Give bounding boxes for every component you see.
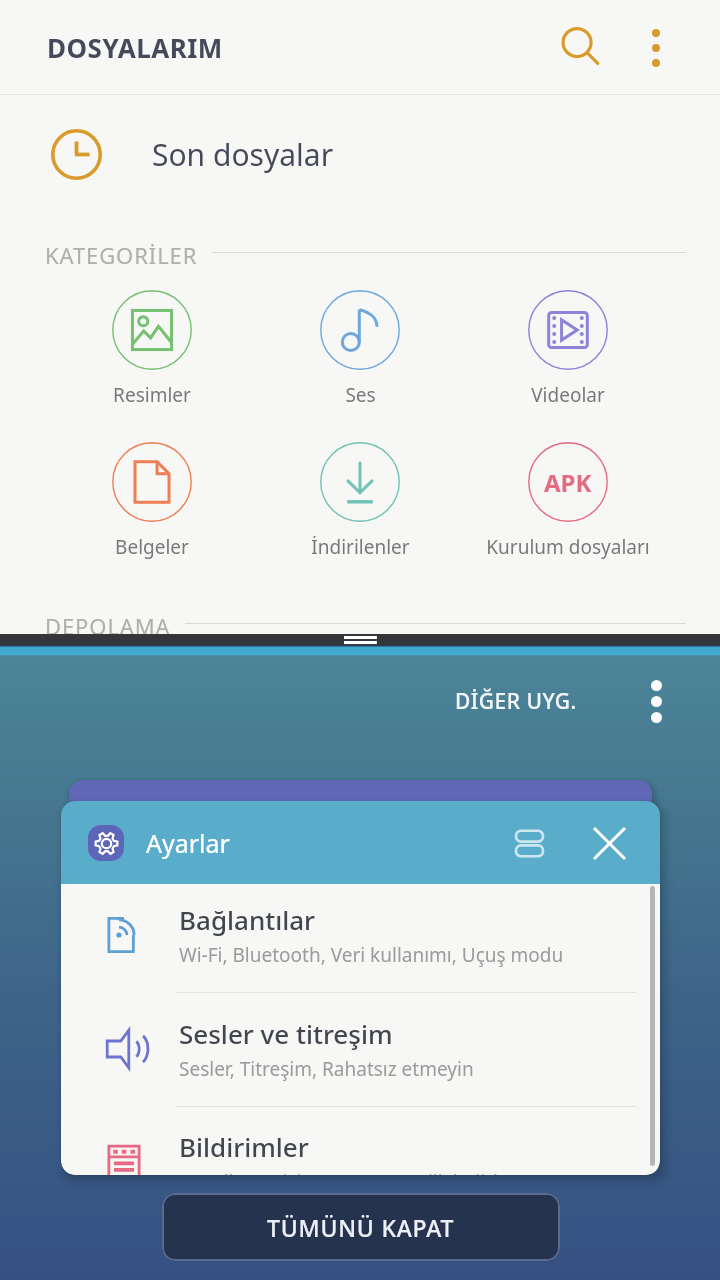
button[interactable]: Belgeler <box>52 442 252 560</box>
staticText: Bağlantılar <box>179 902 316 937</box>
staticText: Son dosyalar <box>152 134 334 175</box>
staticText: Sesler ve titreşim <box>179 1016 393 1051</box>
button[interactable]: Resimler <box>52 290 252 408</box>
button[interactable]: Close <box>583 817 635 869</box>
button[interactable]: Ayarlar <box>61 801 660 884</box>
staticText: APK <box>544 466 592 499</box>
staticText: Sesler, Titreşim, Rahatsız etmeyin <box>179 1056 474 1082</box>
staticText: İndirilenler <box>311 534 410 560</box>
button[interactable]: Ses <box>260 290 460 408</box>
staticText: Ayarlar <box>146 826 230 860</box>
button[interactable]: Son dosyalar <box>0 96 720 212</box>
button[interactable]: İndirilenler <box>260 442 460 560</box>
staticText: KATEGORİLER <box>45 240 198 264</box>
staticText: DOSYALARIM <box>47 30 223 65</box>
button[interactable]: More options <box>620 12 692 84</box>
button[interactable]: Sesler ve titreşim <box>61 998 660 1112</box>
staticText: TÜMÜNÜ KAPAT <box>267 1212 455 1243</box>
button[interactable]: TÜMÜNÜ KAPAT <box>162 1193 560 1261</box>
staticText: Bildirimler <box>179 1129 309 1164</box>
button[interactable]: More options <box>629 674 683 728</box>
button[interactable]: Search <box>544 12 616 84</box>
button[interactable]: Split screen <box>504 818 554 868</box>
button[interactable]: Videolar <box>468 290 668 408</box>
staticText: Ses <box>345 382 376 408</box>
button[interactable]: Bağlantılar <box>61 884 660 998</box>
button[interactable]: APK <box>468 442 668 560</box>
staticText: Belgeler <box>115 534 189 560</box>
staticText: Resimler <box>113 382 191 408</box>
staticText: Engelleme, izin verme, öncelik belirleme <box>179 1169 537 1175</box>
staticText: Videolar <box>531 382 605 408</box>
button[interactable]: Bildirimler <box>61 1111 660 1175</box>
button[interactable]: DİĞER UYG. <box>445 679 587 724</box>
staticText: DEPOLAMA <box>45 611 171 635</box>
staticText: Kurulum dosyaları <box>486 534 650 560</box>
staticText: Wi-Fi, Bluetooth, Veri kullanımı, Uçuş m… <box>179 942 564 968</box>
staticText: DİĞER UYG. <box>455 687 577 716</box>
